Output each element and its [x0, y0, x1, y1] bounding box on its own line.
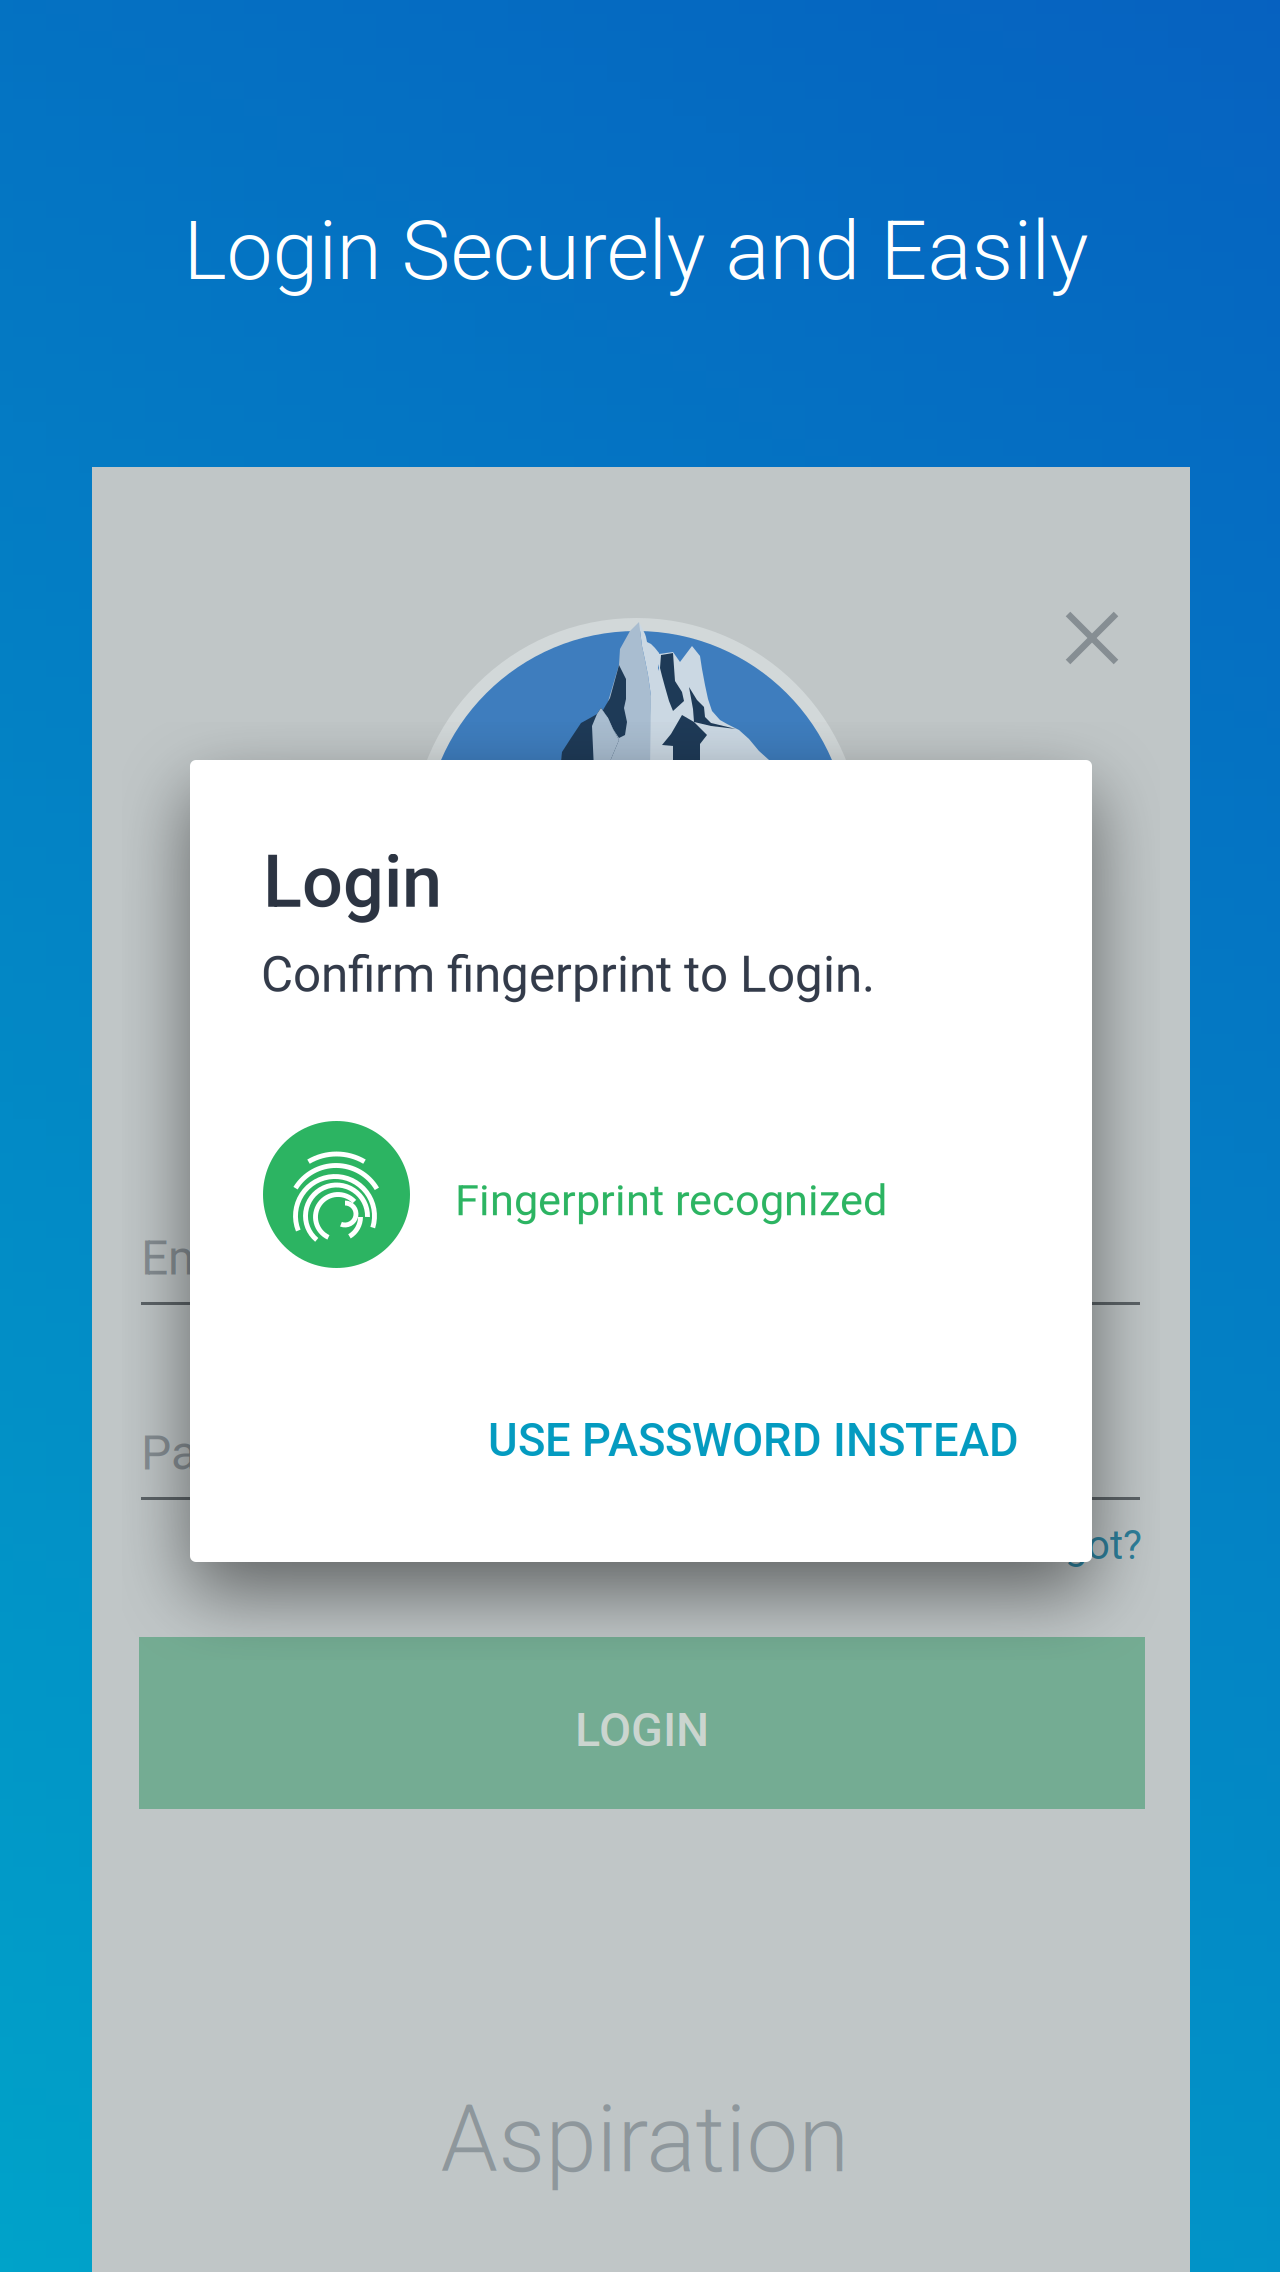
staticText: Password — [141, 1425, 353, 1481]
staticText: Aspiration — [440, 2086, 849, 2194]
staticText: Fingerprint recognized — [455, 1175, 887, 1226]
staticText: Confirm fingerprint to Login. — [261, 946, 875, 1004]
button[interactable]: Forgot? — [999, 1514, 1150, 1577]
staticText: USE PASSWORD INSTEAD — [488, 1414, 1019, 1467]
staticText: LOGIN — [575, 1703, 709, 1757]
staticText: Email — [141, 1230, 260, 1286]
staticText: Forgot? — [1007, 1522, 1142, 1569]
button[interactable]: LOGIN — [139, 1637, 1145, 1809]
button[interactable]: USE PASSWORD INSTEAD — [472, 1392, 1035, 1489]
staticText: Login Securely and Easily — [183, 203, 1088, 299]
button[interactable]: Close — [1040, 586, 1144, 690]
staticText: Login — [263, 840, 442, 924]
